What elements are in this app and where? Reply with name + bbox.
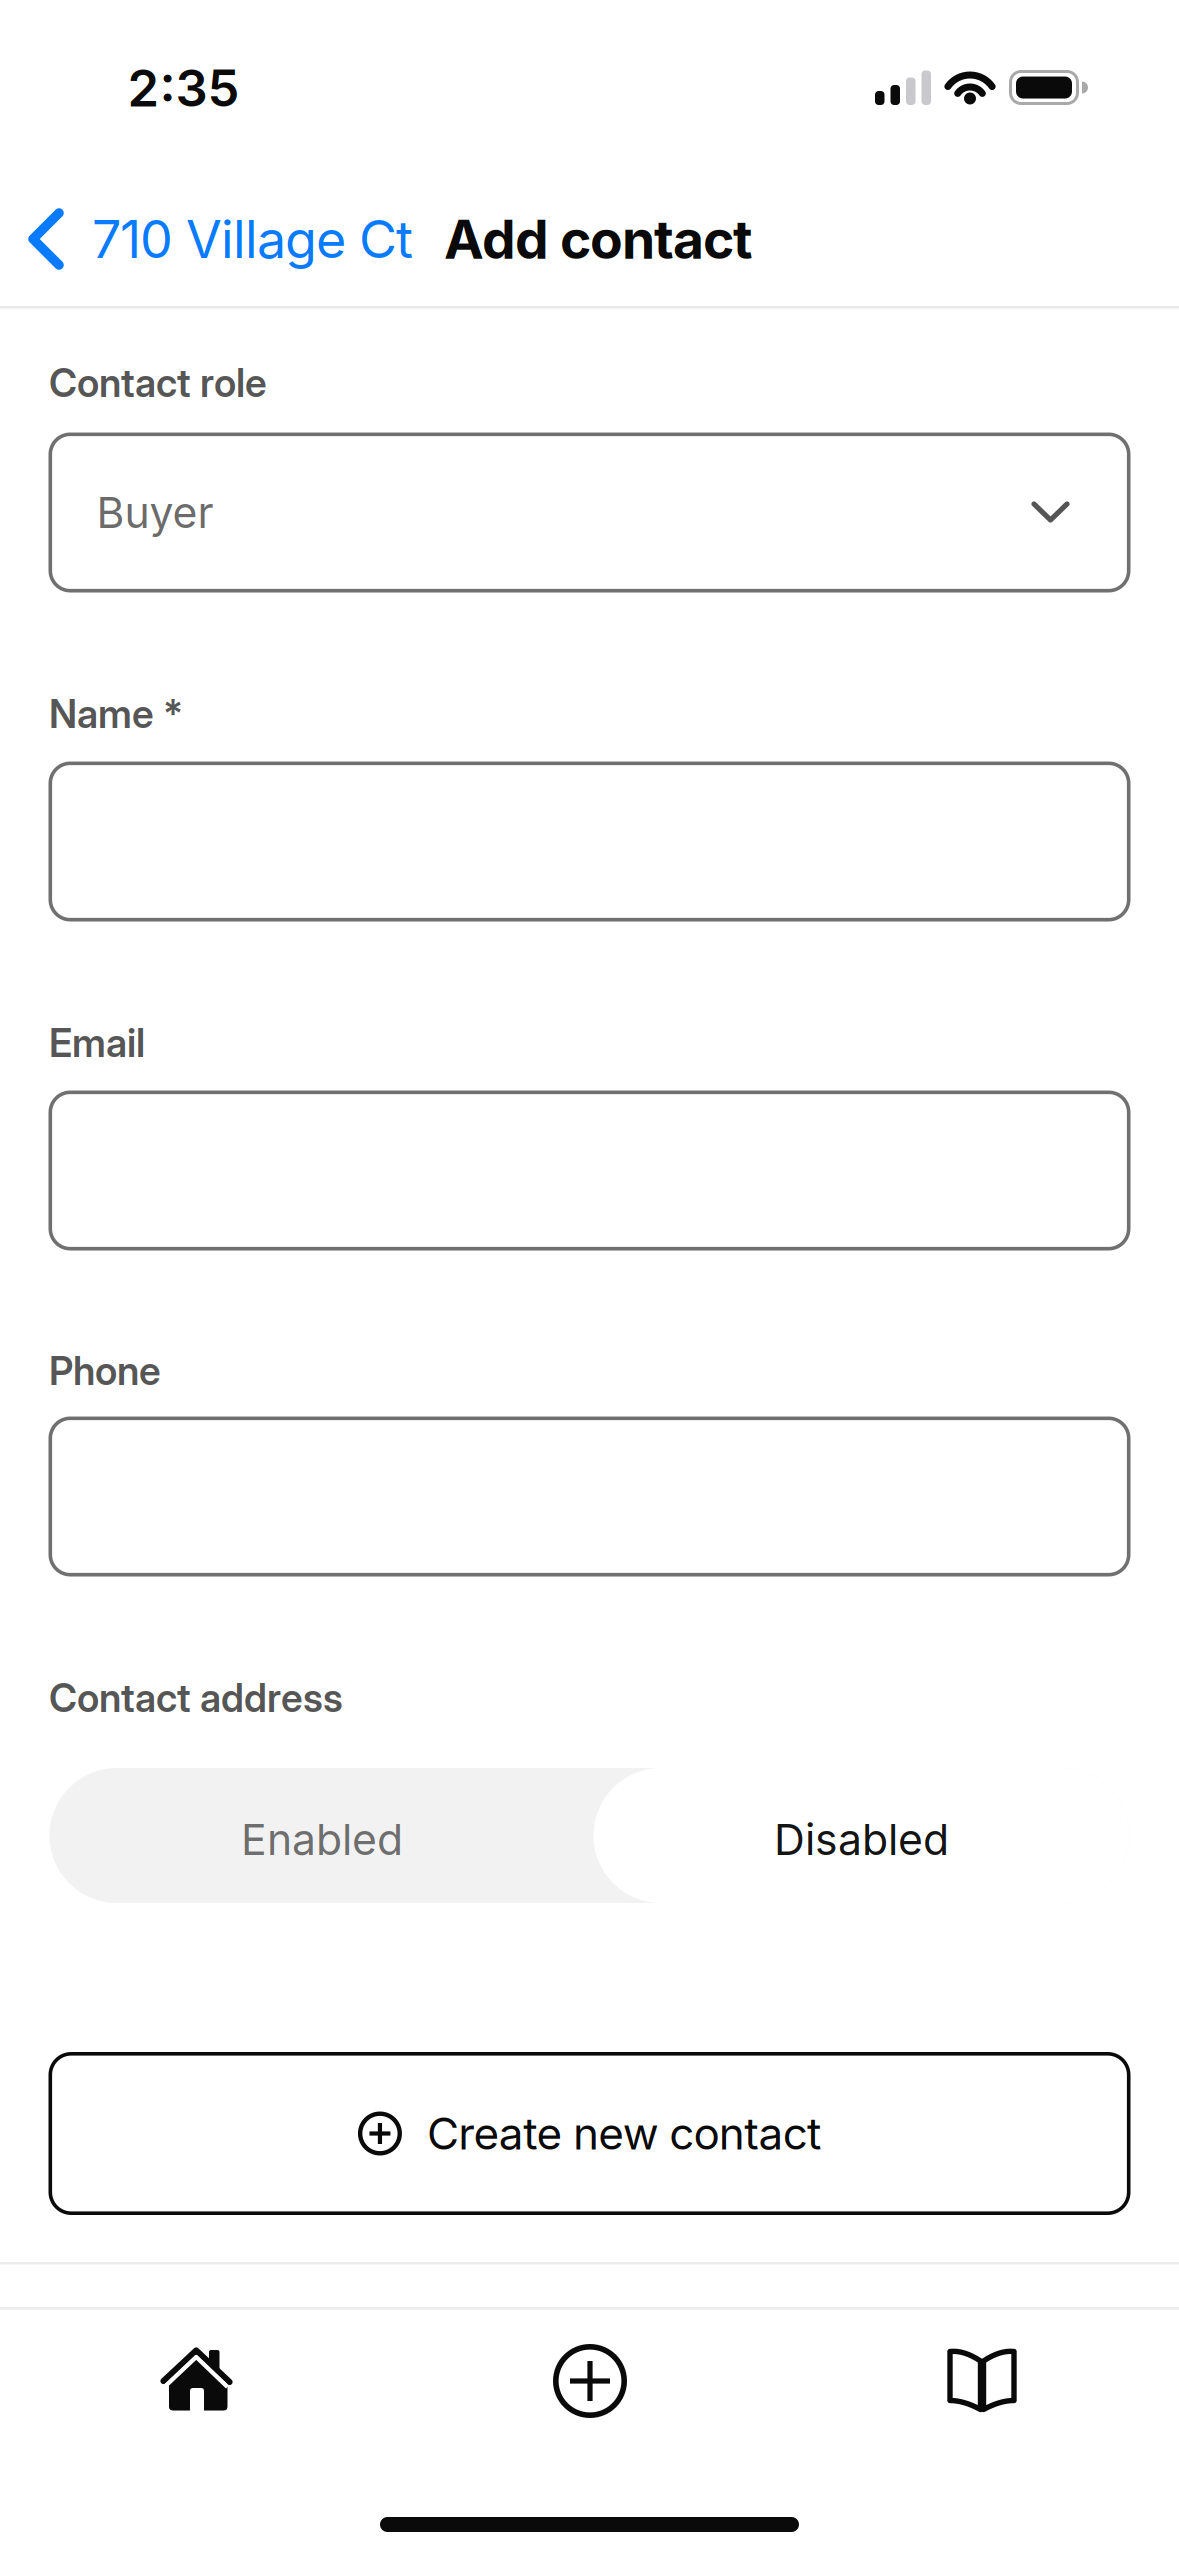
staticText: Add contact [444,208,753,271]
staticText: Enabled [241,1814,403,1865]
staticText: Email [49,1020,145,1066]
staticText: Contact role [49,360,267,406]
staticText: Name * [49,691,183,737]
button[interactable]: Create new contact [48,2052,1130,2215]
staticText: Phone [49,1348,161,1394]
button[interactable]: Library [947,2348,1017,2412]
staticText: Create new contact [427,2107,821,2159]
button[interactable]: Phone [48,1416,1130,1576]
staticText: Contact address [49,1675,343,1721]
button[interactable]: Enabled [49,1768,594,1903]
staticText: 710 Village Ct [92,208,413,270]
button[interactable]: Disabled [593,1768,1129,1903]
button[interactable]: Email [48,1090,1130,1250]
staticText: Disabled [774,1814,949,1865]
button[interactable]: Name [48,761,1130,921]
button[interactable]: Home [160,2347,232,2415]
staticText: 2:35 [127,58,239,118]
staticText: Buyer [96,487,213,538]
button[interactable]: Contact role, Buyer [48,432,1130,592]
button[interactable]: Back to 710 Village Ct [27,208,413,270]
button[interactable]: Add [553,2344,627,2418]
